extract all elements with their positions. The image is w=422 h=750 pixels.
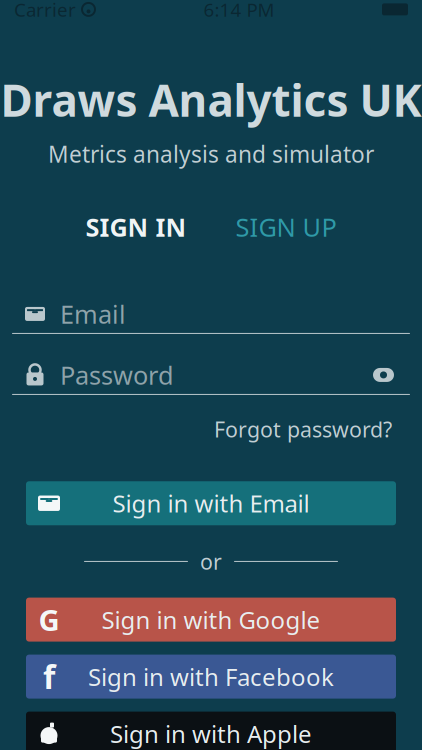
staticText: Metrics analysis and simulator [48, 139, 374, 169]
staticText: SIGN UP [235, 210, 336, 244]
button[interactable]: Sign in with Google [26, 598, 396, 642]
staticText: f [43, 655, 55, 698]
staticText: Password [60, 358, 174, 392]
staticText: Draws Analytics UK [0, 70, 421, 129]
staticText: G [38, 600, 59, 639]
button[interactable]: Sign in with Facebook [26, 655, 396, 699]
staticText: Sign in with Apple [110, 718, 312, 750]
button[interactable]: SIGN IN [61, 207, 211, 247]
staticText: or [200, 547, 222, 576]
staticText: 6:14 PM [203, 0, 274, 22]
staticText: SIGN IN [85, 210, 186, 244]
button[interactable]: Forgot password? [214, 409, 392, 449]
button[interactable]: Sign in with Email [26, 481, 396, 525]
button[interactable]: Sign in with Apple [26, 712, 396, 750]
staticText: Forgot password? [214, 415, 392, 443]
staticText: Email [60, 297, 126, 331]
button[interactable]: SIGN UP [211, 207, 361, 247]
staticText: Carrier [14, 0, 76, 22]
staticText: Sign in with Email [112, 487, 309, 519]
staticText: Sign in with Google [101, 604, 320, 636]
staticText: Sign in with Facebook [88, 661, 334, 693]
button[interactable]: Show password [369, 362, 398, 388]
